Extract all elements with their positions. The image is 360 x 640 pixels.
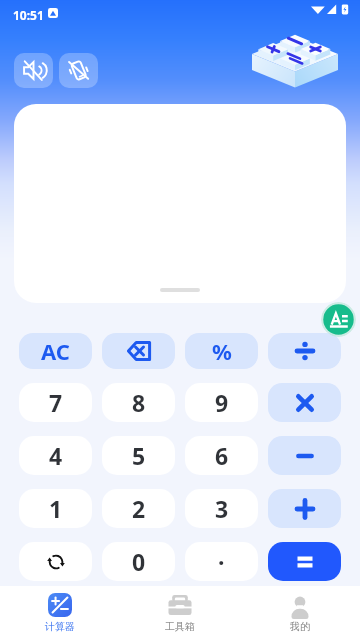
staticText: 0 xyxy=(132,546,146,577)
staticText: 2 xyxy=(132,493,146,524)
button[interactable]: Vibrate off xyxy=(59,53,98,88)
staticText: 3 xyxy=(215,493,229,524)
staticText: 1 xyxy=(49,493,63,524)
button[interactable]: 4 xyxy=(19,436,92,475)
staticText: 工具箱 xyxy=(165,620,195,633)
button[interactable]: 我的 xyxy=(240,586,360,640)
staticText: 10:51 xyxy=(13,7,44,23)
staticText: 计算器 xyxy=(45,620,75,633)
button[interactable]: Minus xyxy=(268,436,341,475)
button[interactable]: Backspace xyxy=(102,333,175,369)
button[interactable]: · xyxy=(185,542,258,581)
staticText: AC xyxy=(41,336,70,366)
button[interactable] xyxy=(268,542,341,581)
staticText: 5 xyxy=(132,440,146,471)
button[interactable]: 3 xyxy=(185,489,258,528)
button[interactable]: Translate xyxy=(321,302,356,337)
button[interactable]: Mute xyxy=(14,53,53,88)
staticText: 6 xyxy=(215,440,229,471)
staticText: 8 xyxy=(132,387,146,418)
staticText: % xyxy=(212,336,232,366)
button[interactable]: 工具箱 xyxy=(120,586,240,640)
button[interactable]: 6 xyxy=(185,436,258,475)
button[interactable]: 5 xyxy=(102,436,175,475)
button[interactable]: Multiply xyxy=(268,383,341,422)
button[interactable]: Convert xyxy=(19,542,92,581)
button[interactable]: 2 xyxy=(102,489,175,528)
button[interactable]: 8 xyxy=(102,383,175,422)
button[interactable]: AC xyxy=(19,333,92,369)
staticText: 7 xyxy=(49,387,63,418)
staticText: · xyxy=(218,546,225,577)
staticText: 9 xyxy=(215,387,229,418)
button[interactable]: 9 xyxy=(185,383,258,422)
button[interactable]: 0 xyxy=(102,542,175,581)
button[interactable]: 7 xyxy=(19,383,92,422)
staticText: 4 xyxy=(49,440,63,471)
button[interactable]: % xyxy=(185,333,258,369)
button[interactable]: 1 xyxy=(19,489,92,528)
button[interactable]: Plus xyxy=(268,489,341,528)
button[interactable]: 计算器 xyxy=(0,586,120,640)
button[interactable]: Divide xyxy=(268,333,341,369)
staticText: 我的 xyxy=(290,620,310,633)
